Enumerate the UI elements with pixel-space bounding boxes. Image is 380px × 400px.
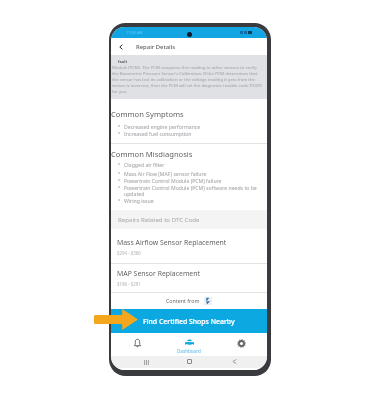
staticText: 11:08 AM	[126, 30, 143, 35]
staticText: $294 - $366	[117, 250, 141, 256]
staticText: Decreased engine performance	[124, 123, 201, 130]
button[interactable]: Settings	[215, 333, 267, 356]
staticText: MAP Sensor Replacement	[117, 269, 200, 278]
staticText: Mass Air Flow (MAF) sensor failure	[124, 170, 207, 177]
staticText: $196 - $291	[117, 281, 141, 287]
staticText: Content from	[166, 297, 200, 304]
staticText: Increased fuel consumption	[124, 130, 192, 137]
staticText: Powertrain Control Module (PCM) failure	[124, 177, 222, 184]
staticText: Dashboard	[177, 348, 201, 354]
staticText: Module (PCM). The PCM compares this read…	[112, 64, 263, 94]
button[interactable]: Back	[115, 38, 127, 55]
staticText: Powertrain Control Module (PCM) software…	[124, 184, 257, 198]
staticText: fault	[118, 59, 128, 64]
staticText: Wiring issue	[124, 197, 154, 204]
staticText: Find Certified Shops Nearby	[143, 317, 235, 326]
staticText: Common Symptoms	[111, 109, 184, 119]
staticText: Common Misdiagnosis	[111, 149, 193, 159]
button[interactable]: Mass Airflow Sensor Replacement	[111, 229, 267, 263]
staticText: Clogged air filter	[124, 161, 165, 168]
staticText: Mass Airflow Sensor Replacement	[117, 238, 227, 247]
staticText: Repairs Related to DTC Code	[118, 215, 200, 223]
button[interactable]: Notifications	[111, 333, 163, 356]
staticText: Repair Details	[136, 43, 176, 51]
button[interactable]: MAP Sensor Replacement	[111, 263, 267, 291]
button[interactable]: Find Certified Shops Nearby	[111, 309, 267, 333]
button[interactable]: Dashboard	[163, 333, 215, 356]
